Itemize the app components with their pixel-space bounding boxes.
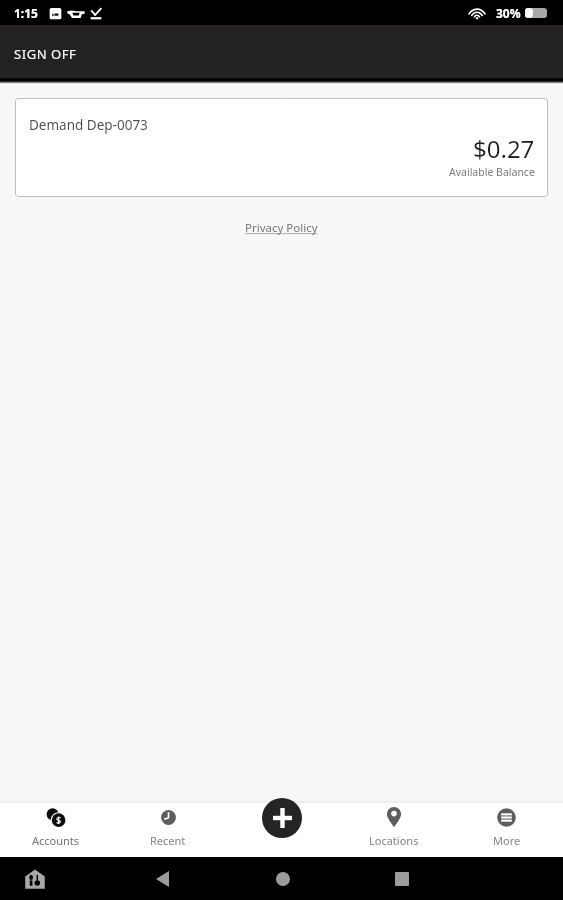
staticText: Locations <box>369 833 419 848</box>
button[interactable]: Home <box>267 863 298 894</box>
button[interactable]: SIGN OFF <box>0 35 91 73</box>
staticText: SIGN OFF <box>14 45 77 63</box>
staticText: More <box>493 833 521 848</box>
staticText: Privacy Policy <box>245 220 318 236</box>
button[interactable]: Accounts <box>0 803 112 857</box>
staticText: 1:15 <box>14 5 38 21</box>
button[interactable]: Add <box>262 798 302 838</box>
staticText: Recent <box>150 833 186 848</box>
staticText: Accounts <box>32 833 80 848</box>
button[interactable]: Privacy Policy <box>245 220 318 236</box>
button[interactable]: Back <box>147 863 178 894</box>
staticText: Available Balance <box>449 165 535 179</box>
other: Switch input method <box>25 869 45 889</box>
button[interactable]: Recent apps <box>386 863 417 894</box>
button[interactable]: Recent <box>112 803 224 857</box>
staticText: 30% <box>496 5 521 21</box>
button[interactable]: More <box>450 803 563 857</box>
button[interactable]: Demand Dep-0073 <box>15 98 548 197</box>
staticText: Demand Dep-0073 <box>29 116 148 134</box>
staticText: $0.27 <box>473 132 535 165</box>
button[interactable]: Locations <box>337 803 450 857</box>
